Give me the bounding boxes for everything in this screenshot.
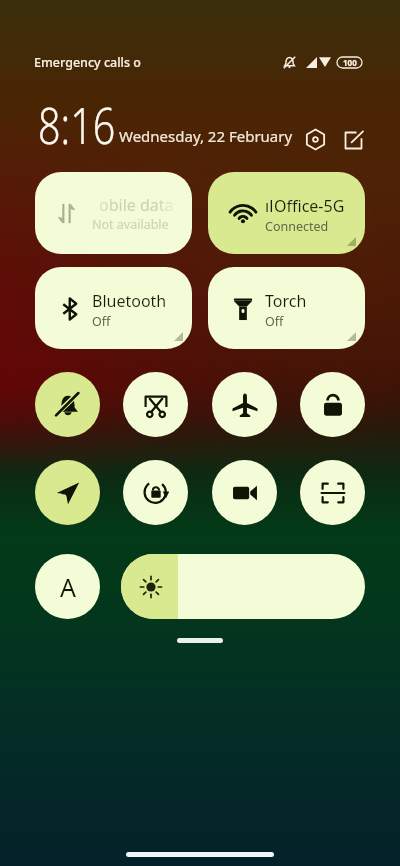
button[interactable]: Font size [35, 554, 100, 619]
button[interactable]: Location [35, 460, 100, 525]
button[interactable]: Silent mode [35, 372, 100, 437]
staticText: Not available [92, 216, 169, 233]
staticText: Off [92, 313, 111, 330]
staticText: Connected [265, 218, 329, 235]
button[interactable]: Screen recorder [212, 460, 277, 525]
staticText: Wednesday, 22 February [119, 126, 293, 146]
staticText: Off [265, 313, 284, 330]
button[interactable]: Settings [297, 121, 333, 157]
button[interactable]: Cast screen [123, 372, 188, 437]
staticText: 100 [343, 57, 357, 68]
staticText: 8:16 [38, 91, 115, 151]
staticText: Torch [265, 290, 307, 312]
staticText: Office-5G [274, 195, 345, 217]
staticText: A [60, 570, 76, 604]
staticText: Bluetooth [92, 290, 167, 312]
button[interactable]: Mobile data not available [35, 172, 192, 254]
staticText: obile data [99, 194, 174, 216]
button[interactable]: Auto rotate [123, 460, 188, 525]
button[interactable]: Wi-Fi Office-5G connected [208, 172, 365, 254]
button[interactable]: Airplane mode [212, 372, 277, 437]
button[interactable]: Torch off [208, 267, 365, 349]
button[interactable]: Edit quick settings [335, 122, 371, 158]
button[interactable]: Lock screen [300, 372, 365, 437]
button[interactable]: Scan QR code [300, 460, 365, 525]
staticText: Emergency calls o [34, 54, 141, 71]
button[interactable]: Brightness [121, 554, 365, 619]
staticText: ıl [265, 195, 274, 217]
button[interactable]: Bluetooth off [35, 267, 192, 349]
